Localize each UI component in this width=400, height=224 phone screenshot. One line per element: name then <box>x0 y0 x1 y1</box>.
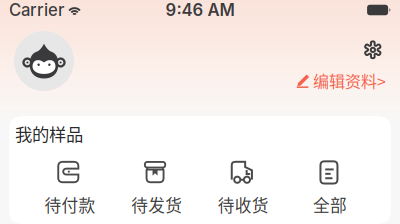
staticText: 我的样品 <box>15 121 83 146</box>
button[interactable]: 待付款 <box>27 162 113 214</box>
button[interactable]: 编辑资料> <box>296 69 386 92</box>
staticText: 待收货 <box>218 192 269 216</box>
button[interactable]: Settings <box>360 39 386 61</box>
button[interactable]: 待发货 <box>113 162 200 214</box>
staticText: 9:46 AM <box>165 0 234 20</box>
staticText: Carrier <box>9 0 64 20</box>
staticText: 待付款 <box>44 192 95 216</box>
button[interactable]: 待收货 <box>200 162 287 214</box>
staticText: 全部 <box>313 192 347 216</box>
staticText: 待发货 <box>131 192 182 216</box>
staticText: 编辑资料> <box>313 69 386 92</box>
button[interactable]: 全部 <box>287 162 373 214</box>
